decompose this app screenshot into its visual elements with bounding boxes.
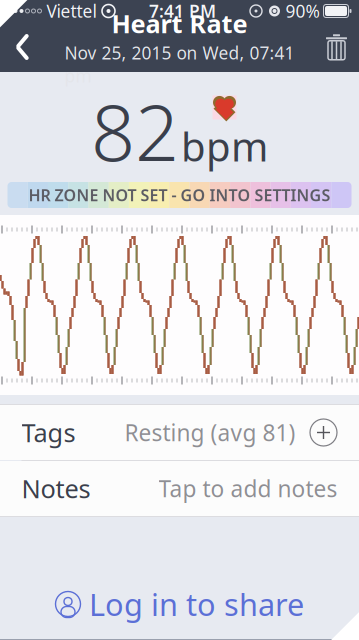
staticText: Nov 25, 2015 on Wed, 07:41 pm [64,41,294,87]
staticText: Resting (avg 81) [124,417,295,447]
staticText: Heart Rate [111,7,247,40]
staticText: Notes [21,472,90,505]
button[interactable]: Log in to share [0,569,359,639]
button[interactable]: Notes [0,461,359,516]
button[interactable]: HR ZONE NOT SET - GO INTO SETTINGS [7,182,351,208]
staticText: Log in to share [89,584,304,624]
staticText: Tap to add notes [158,473,337,503]
staticText: 82 [91,80,179,182]
staticText: 90% [285,0,319,22]
staticText: Tags [21,416,75,449]
button[interactable]: Tags [0,405,359,460]
button[interactable]: Back [0,24,45,70]
staticText: HR ZONE NOT SET - GO INTO SETTINGS [28,184,330,206]
staticText: bpm [181,119,268,172]
button[interactable]: Delete [313,24,359,70]
staticText: Viettel [46,0,96,22]
staticText: 7:41 PM [149,0,216,22]
